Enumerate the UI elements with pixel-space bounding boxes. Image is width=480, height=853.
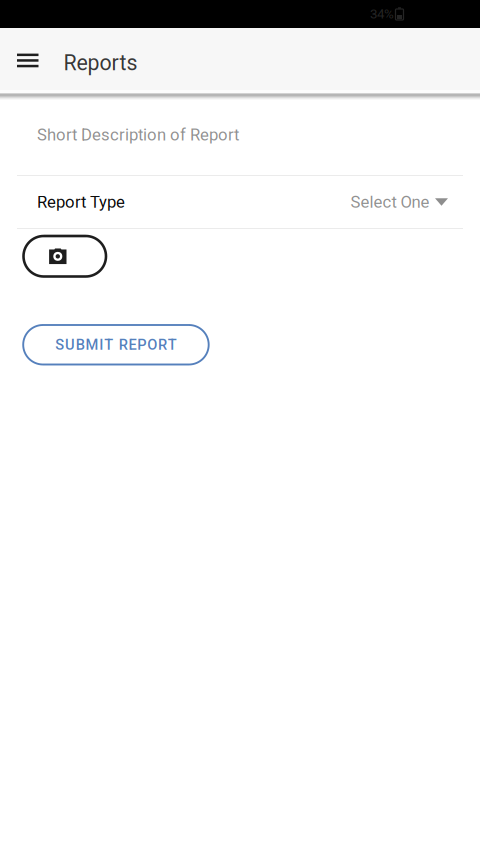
button[interactable]: Add photo bbox=[23, 236, 106, 276]
staticText: 34% bbox=[370, 6, 394, 22]
button[interactable]: Short Description of Report bbox=[0, 100, 480, 175]
button[interactable]: Report Type bbox=[0, 176, 480, 228]
staticText: Short Description of Report bbox=[37, 125, 239, 144]
button[interactable]: SUBMIT REPORT bbox=[23, 325, 209, 364]
staticText: Select One bbox=[350, 192, 429, 212]
button[interactable]: Menu bbox=[0, 28, 48, 90]
staticText: Report Type bbox=[37, 192, 125, 212]
staticText: Reports bbox=[63, 50, 137, 75]
staticText: SUBMIT REPORT bbox=[55, 336, 177, 353]
